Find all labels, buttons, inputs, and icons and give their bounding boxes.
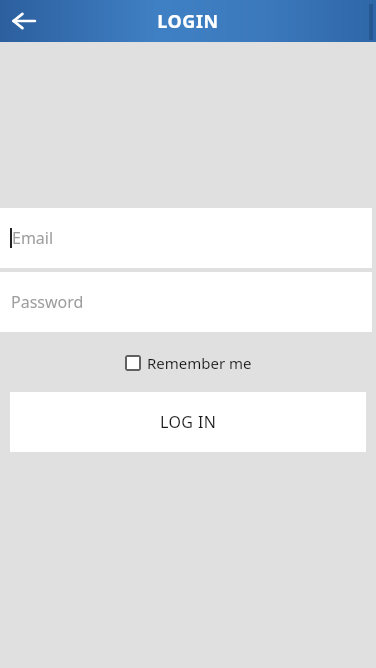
button[interactable]: Remember me — [123, 351, 254, 375]
button[interactable]: LOG IN — [10, 392, 366, 452]
button[interactable]: Password — [0, 272, 372, 332]
staticText: Remember me — [147, 353, 252, 373]
staticText: LOG IN — [160, 411, 217, 433]
button[interactable]: Email — [0, 208, 372, 268]
staticText: LOGIN — [157, 9, 219, 34]
button[interactable]: Back — [6, 3, 42, 39]
staticText: Email — [12, 227, 54, 249]
staticText: Password — [11, 291, 84, 313]
